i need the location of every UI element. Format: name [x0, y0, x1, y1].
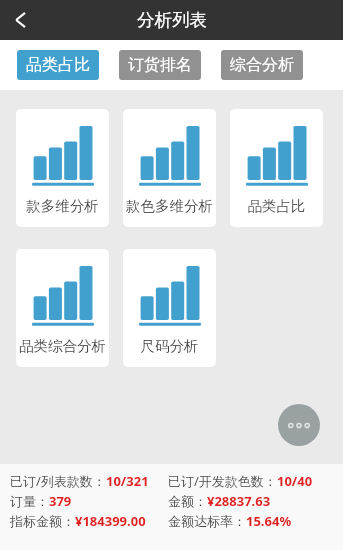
- staticText: ¥184399.00: [75, 512, 146, 530]
- button[interactable]: 综合分析: [221, 50, 303, 80]
- button[interactable]: 订货排名: [119, 50, 201, 80]
- staticText: 品类占比: [26, 55, 90, 75]
- button[interactable]: 品类占比: [230, 109, 323, 227]
- staticText: 订量：: [10, 493, 49, 509]
- staticText: 尺码分析: [123, 337, 216, 355]
- staticText: 品类占比: [230, 197, 323, 215]
- staticText: 综合分析: [230, 55, 294, 75]
- staticText: 15.64%: [246, 512, 292, 530]
- staticText: 款色多维分析: [123, 197, 216, 215]
- staticText: 分析列表: [137, 9, 207, 31]
- button[interactable]: 款多维分析: [16, 109, 109, 227]
- staticText: 品类综合分析: [16, 337, 109, 355]
- button[interactable]: 品类综合分析: [16, 249, 109, 367]
- staticText: 10/321: [106, 472, 149, 490]
- staticText: 款多维分析: [16, 197, 109, 215]
- staticText: ¥28837.63: [207, 492, 271, 510]
- staticText: 已订/开发款色数：: [168, 472, 277, 490]
- staticText: 10/40: [277, 472, 313, 490]
- button[interactable]: Back: [0, 0, 42, 40]
- staticText: 指标金额：: [10, 513, 75, 529]
- staticText: 金额达标率：: [168, 513, 246, 529]
- staticText: 金额：: [168, 493, 207, 509]
- button[interactable]: 品类占比: [17, 50, 99, 80]
- staticText: 订货排名: [128, 55, 192, 75]
- button[interactable]: 款色多维分析: [123, 109, 216, 227]
- button[interactable]: 尺码分析: [123, 249, 216, 367]
- staticText: 379: [49, 492, 72, 510]
- button[interactable]: More options: [278, 404, 320, 446]
- staticText: 已订/列表款数：: [10, 472, 106, 490]
